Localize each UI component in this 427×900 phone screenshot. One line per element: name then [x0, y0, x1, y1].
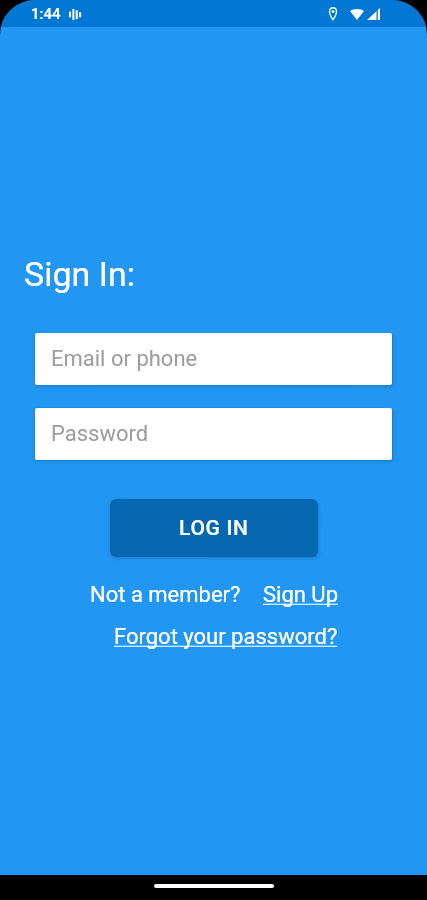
- staticText: Sign Up: [263, 582, 338, 608]
- staticText: Forgot your password?: [114, 624, 338, 650]
- other: Wifi: [350, 8, 364, 20]
- button[interactable]: Forgot your password?: [114, 624, 338, 650]
- staticText: LOG IN: [179, 516, 249, 541]
- staticText: Sign In:: [24, 254, 136, 294]
- other: Mobile signal: [367, 8, 380, 20]
- button[interactable]: LOG IN: [110, 499, 318, 557]
- button[interactable]: Sign Up: [263, 582, 338, 608]
- button[interactable]: Email or phone: [35, 333, 392, 385]
- staticText: Password: [51, 421, 149, 447]
- staticText: 1:44: [31, 5, 61, 23]
- staticText: Not a member?: [90, 582, 241, 608]
- other: Location: [328, 7, 338, 20]
- staticText: Email or phone: [51, 346, 198, 372]
- button[interactable]: Password: [35, 408, 392, 460]
